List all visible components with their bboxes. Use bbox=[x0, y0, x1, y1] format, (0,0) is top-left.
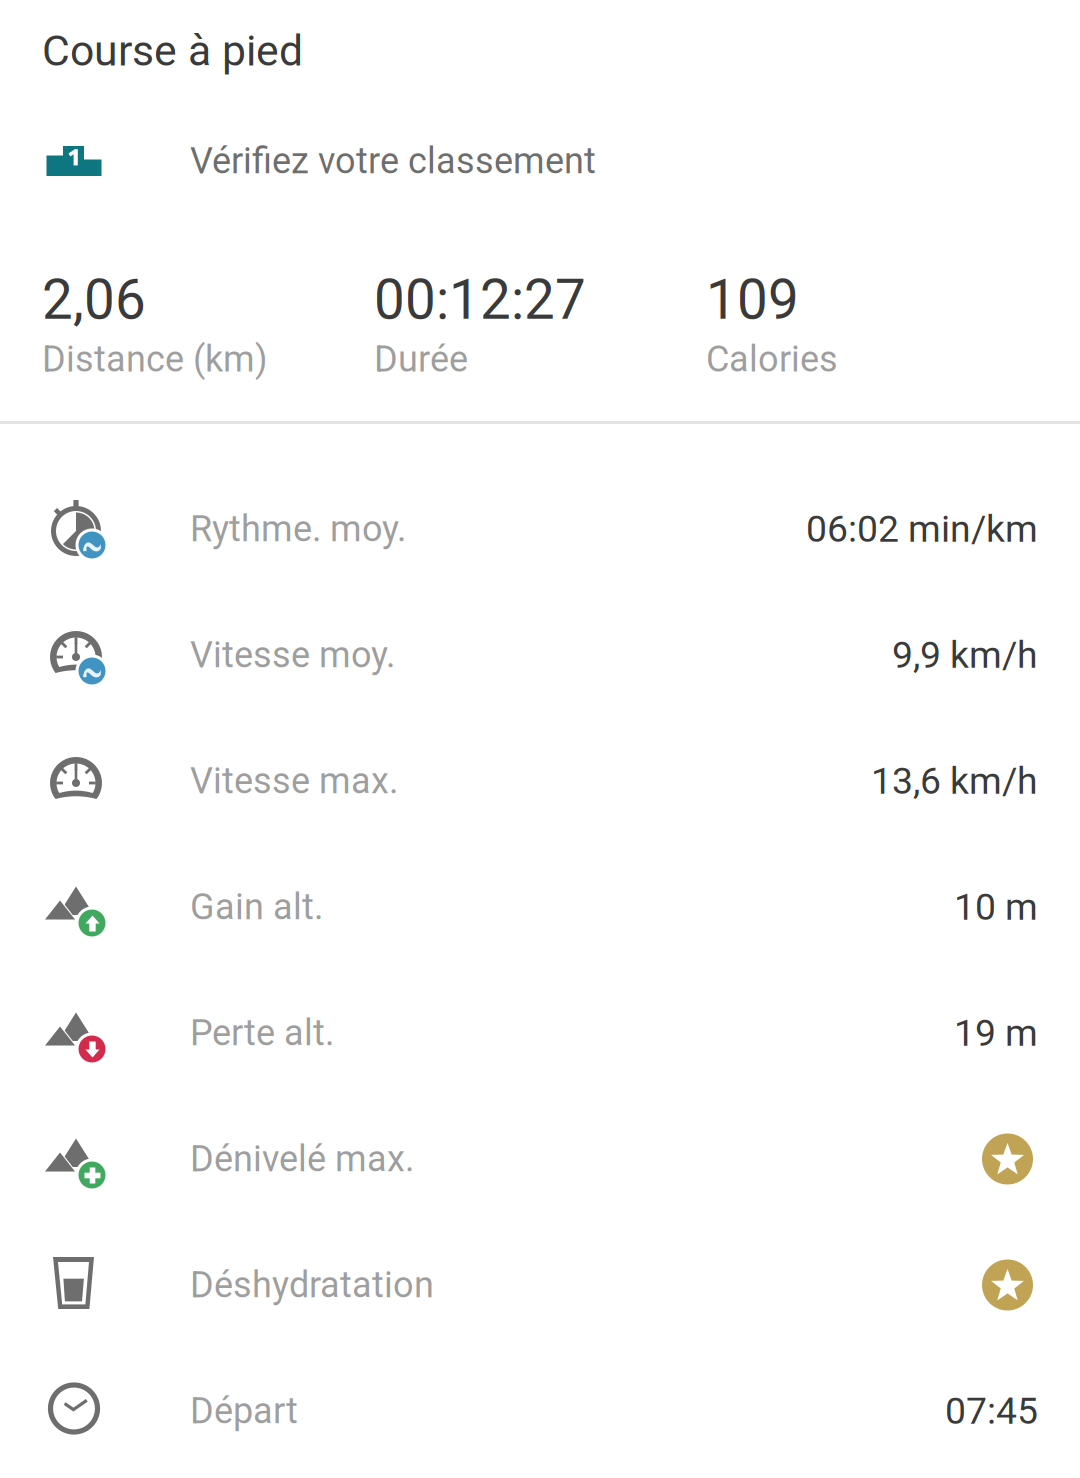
staticText: 10 m bbox=[954, 885, 1038, 929]
staticText: 109 bbox=[706, 268, 799, 332]
staticText: Gain alt. bbox=[190, 886, 323, 928]
button[interactable]: Dénivelé max. bbox=[0, 1096, 1080, 1222]
staticText: Vitesse moy. bbox=[190, 634, 395, 676]
button[interactable]: Vitesse moy. bbox=[0, 592, 1080, 718]
staticText: 13,6 km/h bbox=[871, 759, 1038, 803]
staticText: Course à pied bbox=[42, 26, 303, 76]
staticText: Perte alt. bbox=[190, 1012, 334, 1054]
button[interactable]: Gain alt. bbox=[0, 844, 1080, 970]
staticText: Dénivelé max. bbox=[190, 1138, 414, 1180]
staticText: Déshydratation bbox=[190, 1264, 434, 1306]
staticText: 2,06 bbox=[42, 268, 146, 332]
staticText: Distance (km) bbox=[42, 338, 268, 380]
button[interactable]: Vitesse max. bbox=[0, 718, 1080, 844]
button[interactable]: Départ bbox=[0, 1348, 1080, 1474]
staticText: 07:45 bbox=[945, 1389, 1038, 1433]
button[interactable]: Rythme. moy. bbox=[0, 466, 1080, 592]
staticText: 19 m bbox=[954, 1011, 1038, 1055]
staticText: Rythme. moy. bbox=[190, 508, 406, 550]
staticText: Calories bbox=[706, 338, 838, 380]
staticText: Départ bbox=[190, 1390, 298, 1432]
button[interactable]: Vérifiez votre classement bbox=[42, 126, 1080, 196]
staticText: 00:12:27 bbox=[374, 268, 586, 332]
button[interactable]: Déshydratation bbox=[0, 1222, 1080, 1348]
button[interactable]: Perte alt. bbox=[0, 970, 1080, 1096]
staticText: Durée bbox=[374, 338, 468, 380]
staticText: Vitesse max. bbox=[190, 760, 398, 802]
staticText: 9,9 km/h bbox=[892, 633, 1038, 677]
staticText: 06:02 min/km bbox=[806, 507, 1038, 551]
staticText: Vérifiez votre classement bbox=[190, 140, 596, 182]
